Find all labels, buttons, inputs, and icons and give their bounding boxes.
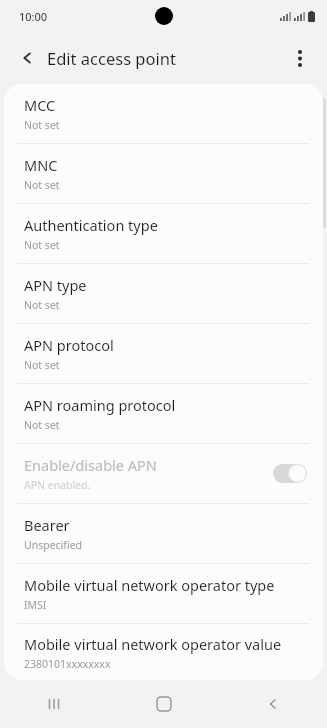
staticText: MNC — [24, 155, 58, 175]
staticText: 10:00 — [19, 9, 48, 24]
button[interactable]: Home — [109, 680, 218, 728]
staticText: Bearer — [24, 515, 70, 535]
staticText: Mobile virtual network operator value — [24, 634, 282, 654]
staticText: Not set — [24, 418, 60, 432]
button[interactable]: Enable or disable APN — [273, 464, 307, 483]
staticText: Not set — [24, 298, 60, 312]
staticText: Mobile virtual network operator type — [24, 575, 275, 595]
button[interactable]: Back — [218, 680, 327, 728]
staticText: APN type — [24, 275, 87, 295]
button[interactable]: APN protocol — [4, 324, 323, 383]
staticText: APN enabled. — [24, 478, 91, 492]
staticText: Unspecified — [24, 538, 83, 552]
staticText: MCC — [24, 95, 56, 115]
staticText: Edit access point — [47, 47, 176, 69]
button[interactable]: Mobile virtual network operator value — [4, 624, 323, 680]
staticText: Not set — [24, 238, 60, 252]
button[interactable]: Recent apps — [0, 680, 109, 728]
staticText: APN protocol — [24, 335, 114, 355]
button[interactable]: Authentication type — [4, 204, 323, 263]
button[interactable]: Enable/disable APN — [4, 444, 323, 503]
button[interactable]: APN roaming protocol — [4, 384, 323, 443]
button[interactable]: APN type — [4, 264, 323, 323]
button[interactable]: MCC — [4, 84, 323, 143]
staticText: 2380101xxxxxxxx — [24, 657, 111, 671]
button[interactable]: Mobile virtual network operator type — [4, 564, 323, 623]
staticText: Authentication type — [24, 215, 158, 235]
button[interactable]: Bearer — [4, 504, 323, 563]
staticText: IMSI — [24, 598, 47, 612]
button[interactable]: More options — [280, 38, 320, 78]
staticText: Enable/disable APN — [24, 455, 157, 475]
button[interactable]: Back — [8, 38, 48, 78]
staticText: Not set — [24, 358, 60, 372]
staticText: APN roaming protocol — [24, 395, 176, 415]
staticText: Not set — [24, 178, 60, 192]
button[interactable]: MNC — [4, 144, 323, 203]
staticText: Not set — [24, 118, 60, 132]
